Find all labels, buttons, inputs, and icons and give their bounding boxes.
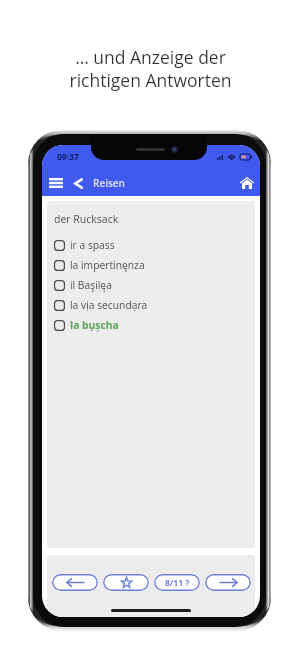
button[interactable]: Back bbox=[67, 172, 89, 194]
button[interactable]: Previous bbox=[52, 574, 98, 591]
button[interactable]: il Başilęa bbox=[47, 275, 255, 295]
staticText: ir a spass bbox=[70, 238, 115, 252]
staticText: la impertinęnza bbox=[70, 258, 145, 272]
button[interactable]: la bụșcha bbox=[47, 315, 255, 335]
staticText: il Başilęa bbox=[70, 278, 112, 292]
staticText: … und Anzeige der richtigen Antworten bbox=[69, 45, 232, 92]
button[interactable]: Menu bbox=[44, 171, 68, 195]
staticText: Reisen bbox=[93, 176, 125, 190]
button[interactable]: Next bbox=[205, 574, 251, 591]
staticText: 8/11 ? bbox=[165, 577, 190, 589]
staticText: 09:37 bbox=[57, 151, 79, 163]
staticText: la bụșcha bbox=[70, 318, 119, 332]
button[interactable]: la vịa secundạra bbox=[47, 295, 255, 315]
button[interactable]: Home bbox=[237, 173, 257, 193]
button[interactable]: la impertinęnza bbox=[47, 255, 255, 275]
staticText: la vịa secundạra bbox=[70, 298, 148, 312]
staticText: der Rucksack bbox=[54, 212, 119, 226]
button[interactable]: ir a spass bbox=[47, 235, 255, 255]
button[interactable]: Progress 8 of 11 bbox=[154, 574, 200, 591]
button[interactable]: Favourite bbox=[103, 574, 149, 591]
